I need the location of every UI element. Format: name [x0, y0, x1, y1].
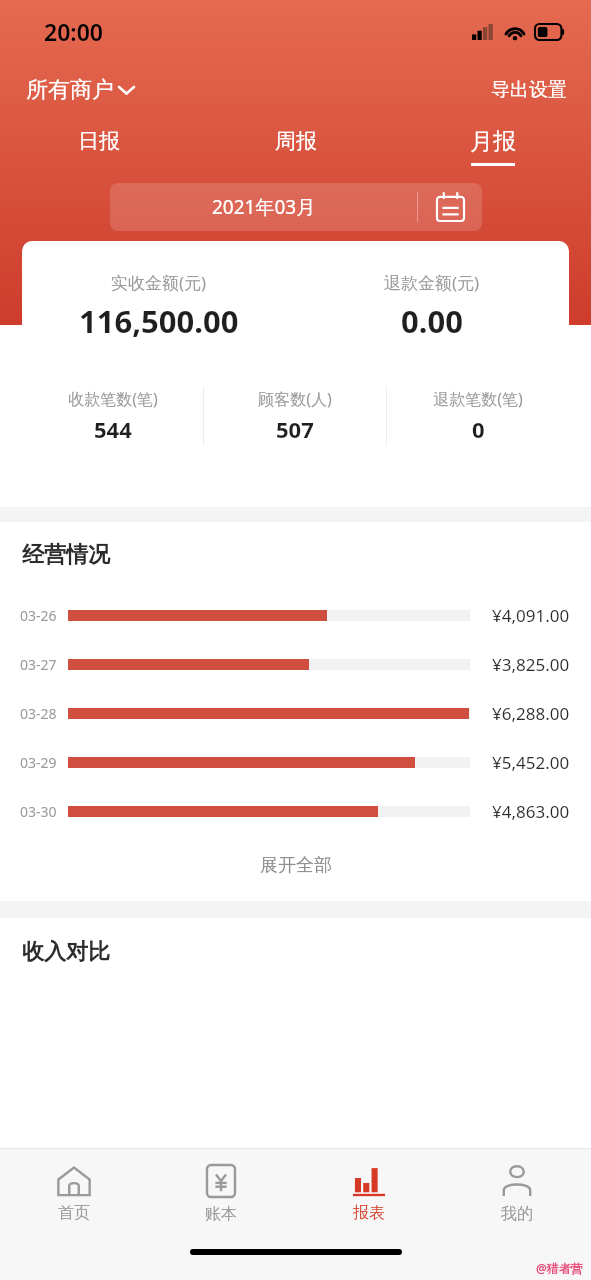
staticText: 周报 [275, 128, 317, 154]
button[interactable]: 03-29 [0, 738, 591, 787]
staticText: 退款笔数(笔) [433, 388, 523, 410]
button[interactable]: 03-28 [0, 689, 591, 738]
staticText: 报表 [353, 1203, 385, 1223]
button[interactable]: 周报 [197, 117, 394, 175]
staticText: 0.00 [401, 300, 463, 342]
staticText: 退款金额(元) [384, 271, 480, 294]
staticText: ¥5,452.00 [492, 751, 570, 774]
staticText: 03-28 [20, 704, 68, 723]
button[interactable]: 2021年03月 [110, 183, 482, 231]
staticText: 收款笔数(笔) [68, 388, 158, 410]
button[interactable]: 账本 [147, 1149, 295, 1239]
button[interactable]: 所有商户 [22, 72, 138, 108]
staticText: ¥6,288.00 [492, 702, 570, 725]
staticText: 03-26 [20, 606, 68, 625]
staticText: 116,500.00 [79, 300, 239, 342]
staticText: 首页 [58, 1203, 90, 1223]
button[interactable]: 我的 [443, 1149, 591, 1239]
staticText: @猎者营 [536, 1260, 583, 1276]
staticText: 账本 [205, 1204, 237, 1224]
staticText: 我的 [501, 1204, 533, 1224]
staticText: 实收金额(元) [111, 271, 207, 294]
staticText: 544 [94, 414, 132, 444]
staticText: 日报 [78, 128, 120, 154]
button[interactable]: 03-27 [0, 640, 591, 689]
staticText: 收入对比 [22, 938, 110, 966]
staticText: 顾客数(人) [258, 388, 332, 410]
staticText: 20:00 [44, 16, 103, 47]
button[interactable]: 首页 [0, 1149, 147, 1239]
staticText: 03-30 [20, 802, 68, 821]
button[interactable]: 日报 [0, 117, 197, 175]
button[interactable]: 导出设置 [485, 72, 573, 108]
staticText: 月报 [470, 127, 516, 156]
button[interactable]: 03-30 [0, 787, 591, 836]
staticText: 所有商户 [26, 76, 114, 104]
staticText: ¥4,091.00 [492, 604, 570, 627]
button[interactable]: 月报 [394, 117, 591, 175]
staticText: 0 [472, 414, 485, 444]
staticText: 经营情况 [22, 541, 110, 569]
staticText: 03-29 [20, 753, 68, 772]
staticText: ¥4,863.00 [492, 800, 570, 823]
button[interactable]: 03-26 [0, 591, 591, 640]
button[interactable]: 报表 [295, 1149, 443, 1239]
staticText: 03-27 [20, 655, 68, 674]
staticText: 2021年03月 [212, 194, 316, 220]
other: Calendar [437, 193, 464, 221]
staticText: ¥3,825.00 [492, 653, 570, 676]
button[interactable]: 展开全部 [242, 848, 350, 883]
staticText: 507 [276, 414, 314, 444]
